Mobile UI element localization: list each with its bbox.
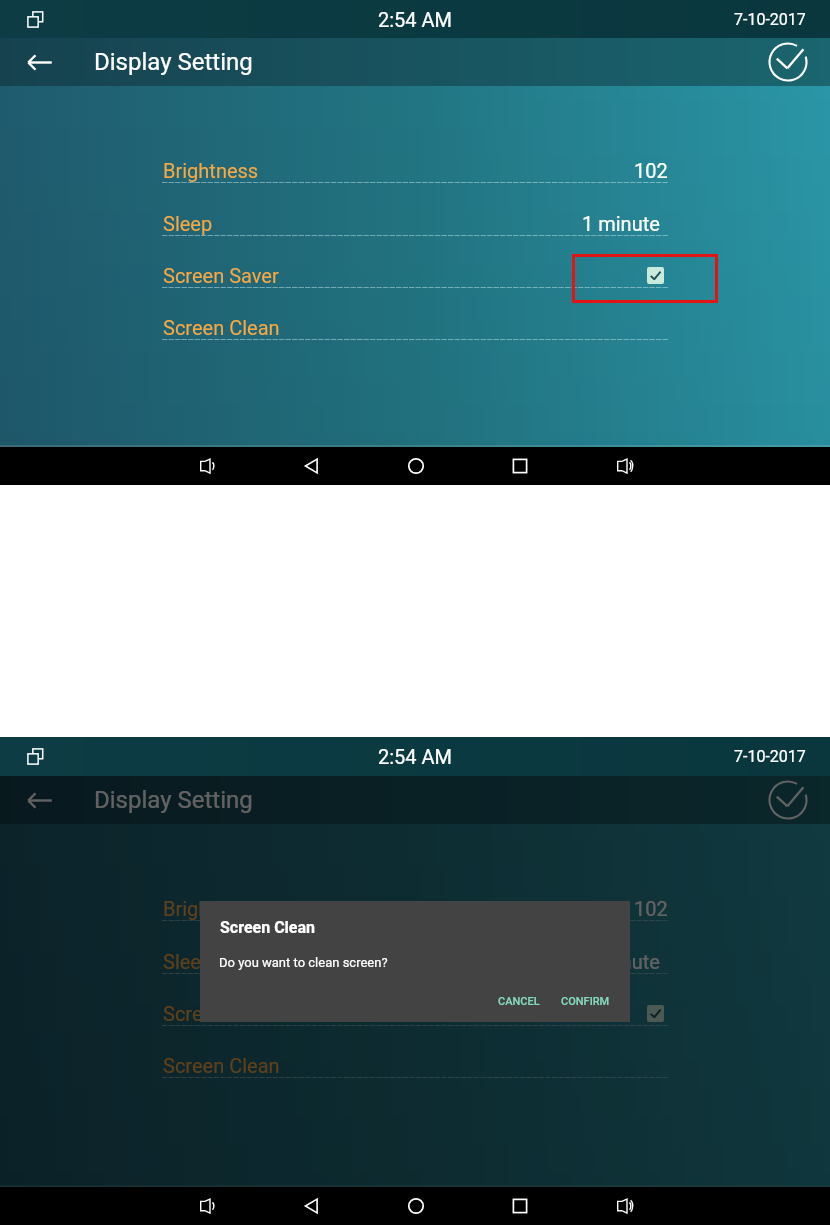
staticText: Screen Saver: [163, 1002, 279, 1025]
staticText: Display Setting: [94, 48, 253, 76]
staticText: 102: [634, 897, 668, 920]
button[interactable]: Confirm: [764, 776, 812, 824]
staticText: Screen Saver: [163, 264, 279, 287]
button[interactable]: Sleep: [162, 936, 668, 982]
staticText: Do you want to clean screen?: [219, 955, 388, 970]
staticText: 7-10-2017: [734, 10, 806, 29]
button[interactable]: Volume down: [188, 1187, 226, 1225]
button[interactable]: Volume up: [605, 447, 643, 485]
button[interactable]: Multi window: [16, 737, 54, 775]
button[interactable]: Volume down: [188, 447, 226, 485]
button[interactable]: Home: [397, 447, 435, 485]
staticText: Brightness: [163, 159, 259, 182]
button[interactable]: Sleep: [162, 198, 668, 244]
button[interactable]: Screen Saver enabled: [647, 267, 664, 284]
staticText: 1 minute: [582, 212, 660, 235]
button[interactable]: Screen Clean: [162, 1040, 668, 1086]
button[interactable]: Back: [15, 38, 63, 86]
staticText: 2:54 AM: [378, 8, 453, 31]
staticText: Sleep: [163, 950, 213, 973]
staticText: Screen Clean: [220, 918, 316, 937]
button[interactable]: Screen Clean: [162, 302, 668, 348]
button[interactable]: Back: [293, 447, 331, 485]
staticText: CONFIRM: [561, 995, 610, 1008]
button[interactable]: Screen Saver: [162, 250, 668, 296]
staticText: Brightness: [163, 897, 259, 920]
button[interactable]: Recents: [501, 447, 539, 485]
staticText: 1 minute: [582, 950, 660, 973]
button[interactable]: Back: [293, 1187, 331, 1225]
button[interactable]: Volume up: [605, 1187, 643, 1225]
staticText: Display Setting: [94, 786, 253, 814]
button[interactable]: Brightness: [162, 883, 668, 929]
staticText: 7-10-2017: [734, 747, 806, 766]
staticText: CANCEL: [498, 995, 540, 1008]
staticText: Screen Clean: [163, 316, 280, 339]
button[interactable]: Home: [397, 1187, 435, 1225]
button[interactable]: Multi window: [16, 0, 54, 38]
button[interactable]: CONFIRM: [553, 991, 618, 1012]
button[interactable]: Back: [15, 776, 63, 824]
button[interactable]: Screen Saver: [162, 988, 668, 1034]
staticText: Sleep: [163, 212, 213, 235]
staticText: Screen Clean: [163, 1054, 280, 1077]
button[interactable]: Recents: [501, 1187, 539, 1225]
staticText: 102: [634, 159, 668, 182]
button[interactable]: CANCEL: [490, 991, 548, 1012]
button[interactable]: Confirm: [764, 38, 812, 86]
staticText: 2:54 AM: [378, 745, 453, 768]
button[interactable]: Screen Saver enabled: [647, 1005, 664, 1022]
button[interactable]: Brightness: [162, 145, 668, 191]
